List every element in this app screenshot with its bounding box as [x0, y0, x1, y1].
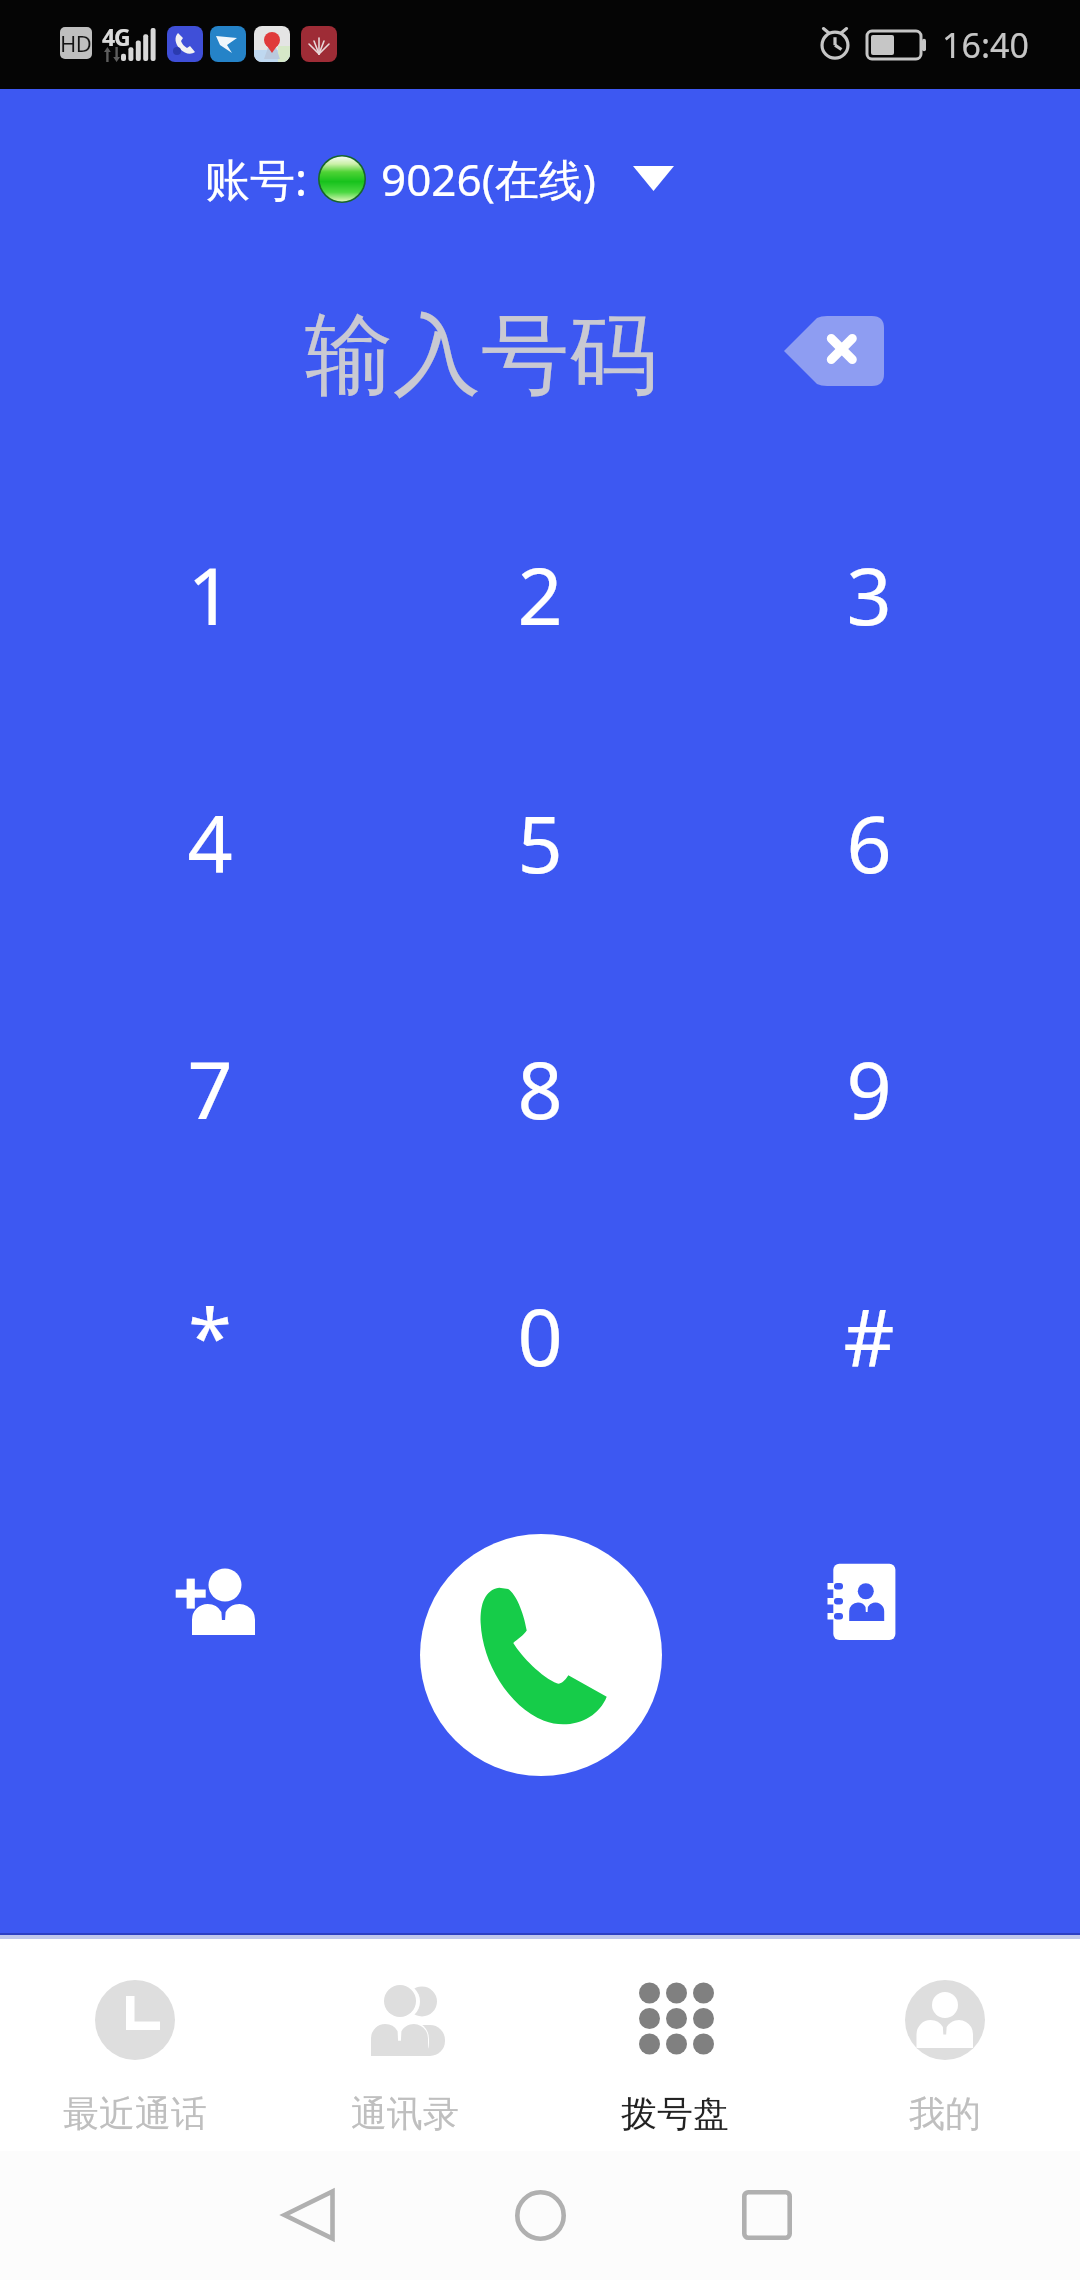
button[interactable]: 8 [430, 1009, 650, 1169]
staticText: 2 [517, 541, 563, 649]
staticText: HD [60, 28, 92, 58]
button[interactable]: 4 [100, 763, 320, 923]
staticText: 5 [517, 789, 563, 897]
staticText: * [188, 1282, 232, 1390]
staticText: 9026(在线) [381, 149, 597, 209]
button[interactable]: 我的 [810, 1939, 1080, 2151]
button[interactable]: 通讯录 [270, 1939, 540, 2151]
button[interactable]: Call [420, 1534, 662, 1776]
staticText: 通讯录 [351, 2091, 459, 2136]
button[interactable]: Back [238, 2181, 378, 2249]
button[interactable]: 最近通话 [0, 1939, 270, 2151]
button[interactable]: 5 [430, 763, 650, 923]
button[interactable]: 2 [430, 515, 650, 675]
staticText: 16:40 [942, 22, 1029, 68]
staticText: 3 [846, 541, 892, 649]
button[interactable]: 1 [100, 515, 320, 675]
staticText: 8 [517, 1035, 563, 1143]
button[interactable]: 7 [100, 1009, 320, 1169]
staticText: # [843, 1282, 895, 1390]
staticText: 0 [517, 1282, 563, 1390]
staticText: 4G [102, 21, 130, 52]
staticText: 1 [187, 541, 233, 649]
button[interactable]: # [759, 1256, 979, 1416]
button[interactable]: Add contact [165, 1555, 270, 1650]
button[interactable]: 0 [430, 1256, 650, 1416]
button[interactable]: 拨号盘 [540, 1939, 810, 2151]
staticText: 我的 [909, 2091, 981, 2136]
staticText: 4 [187, 789, 233, 897]
staticText: 7 [187, 1035, 233, 1143]
button[interactable]: Recents [697, 2181, 837, 2249]
button[interactable]: 输入号码 [140, 296, 740, 414]
button[interactable]: 账号: [195, 138, 684, 219]
button[interactable]: 6 [759, 763, 979, 923]
button[interactable]: 9 [759, 1009, 979, 1169]
button[interactable]: Contacts [820, 1555, 910, 1650]
button[interactable]: Backspace [784, 316, 884, 386]
staticText: 最近通话 [63, 2091, 207, 2136]
staticText: 输入号码 [305, 300, 657, 411]
staticText: 拨号盘 [621, 2091, 729, 2136]
staticText: 账号: [205, 148, 308, 209]
staticText: 9 [846, 1035, 892, 1143]
staticText: 6 [846, 789, 892, 897]
button[interactable]: Home [470, 2181, 610, 2249]
button[interactable]: * [100, 1256, 320, 1416]
button[interactable]: 3 [759, 515, 979, 675]
